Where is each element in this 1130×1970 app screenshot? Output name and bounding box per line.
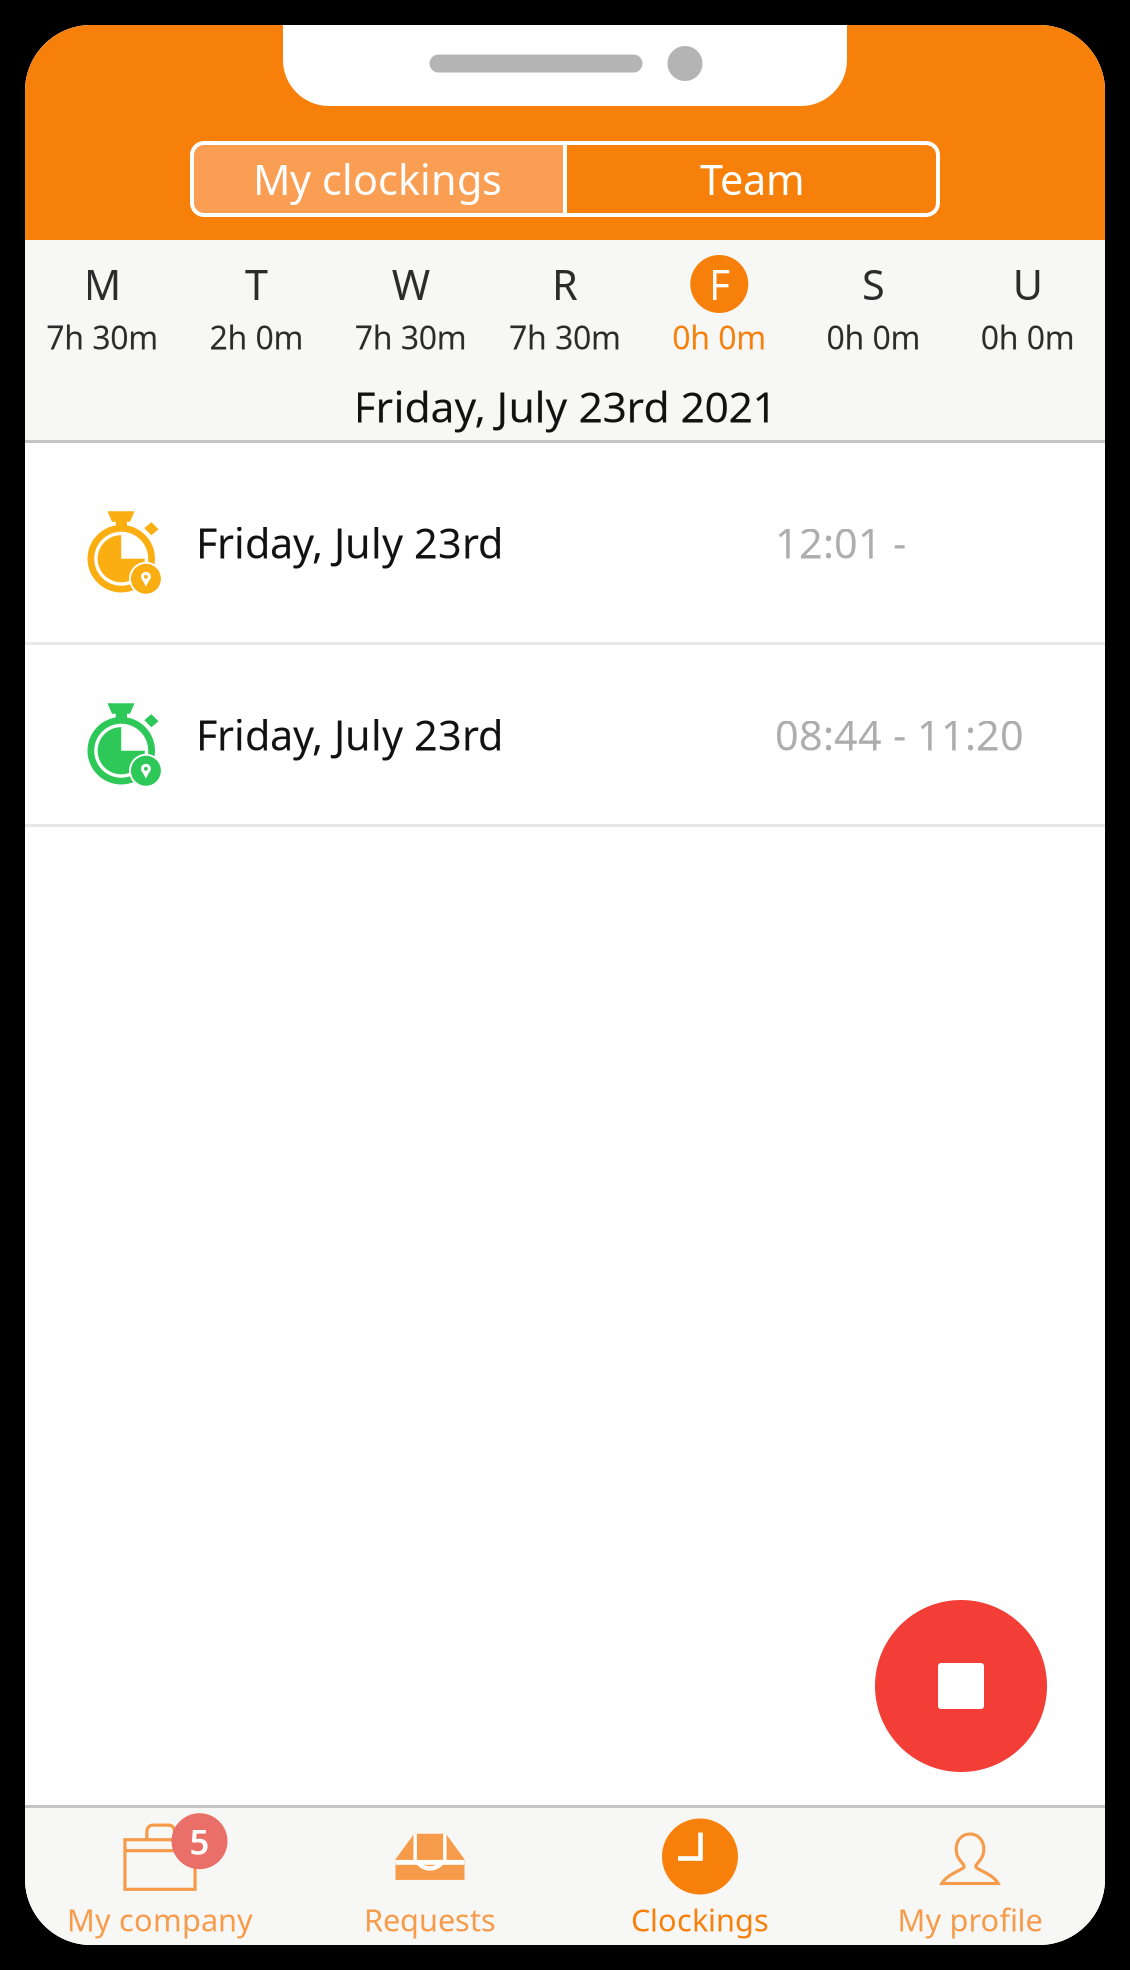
button[interactable]: R [488,254,642,360]
staticText: Clockings [631,1899,769,1940]
button[interactable]: U [951,254,1105,360]
staticText: F [709,257,730,311]
staticText: 0h 0m [981,316,1075,358]
button[interactable]: Requests [295,1806,565,1946]
staticText: 08:44 - 11:20 [775,707,1024,762]
button[interactable]: M [25,254,179,360]
button[interactable]: W [334,254,488,360]
staticText: 0h 0m [672,316,766,358]
staticText: S [862,257,885,311]
staticText: 2h 0m [209,316,303,358]
staticText: 7h 30m [355,316,467,358]
staticText: Friday, July 23rd [196,707,503,762]
staticText: Requests [364,1899,496,1940]
staticText: T [245,257,268,311]
button[interactable]: F [642,254,796,360]
staticText: My profile [897,1899,1042,1940]
staticText: 0h 0m [827,316,921,358]
staticText: My clockings [253,152,502,206]
staticText: 12:01 - [775,515,906,570]
button[interactable]: Stop clocking [875,1600,1047,1772]
staticText: 7h 30m [46,316,158,358]
button[interactable]: Team [567,143,938,215]
button[interactable]: S [796,254,951,360]
button[interactable]: Friday, July 23rd [25,645,1105,824]
staticText: M [84,257,121,311]
staticText: 7h 30m [509,316,621,358]
staticText: Friday, July 23rd 2021 [353,378,776,434]
button[interactable]: Clockings [565,1806,835,1946]
staticText: U [1013,257,1043,311]
button[interactable]: T [179,254,334,360]
staticText: 5 [189,1818,209,1864]
staticText: W [392,257,430,311]
staticText: Team [700,152,805,206]
button[interactable]: 5 [25,1806,295,1946]
button[interactable]: My clockings [192,143,563,215]
staticText: My company [67,1899,253,1940]
button[interactable]: Friday, July 23rd [25,443,1105,642]
button[interactable]: My profile [835,1806,1105,1946]
staticText: Friday, July 23rd [196,515,503,570]
staticText: R [552,257,578,311]
